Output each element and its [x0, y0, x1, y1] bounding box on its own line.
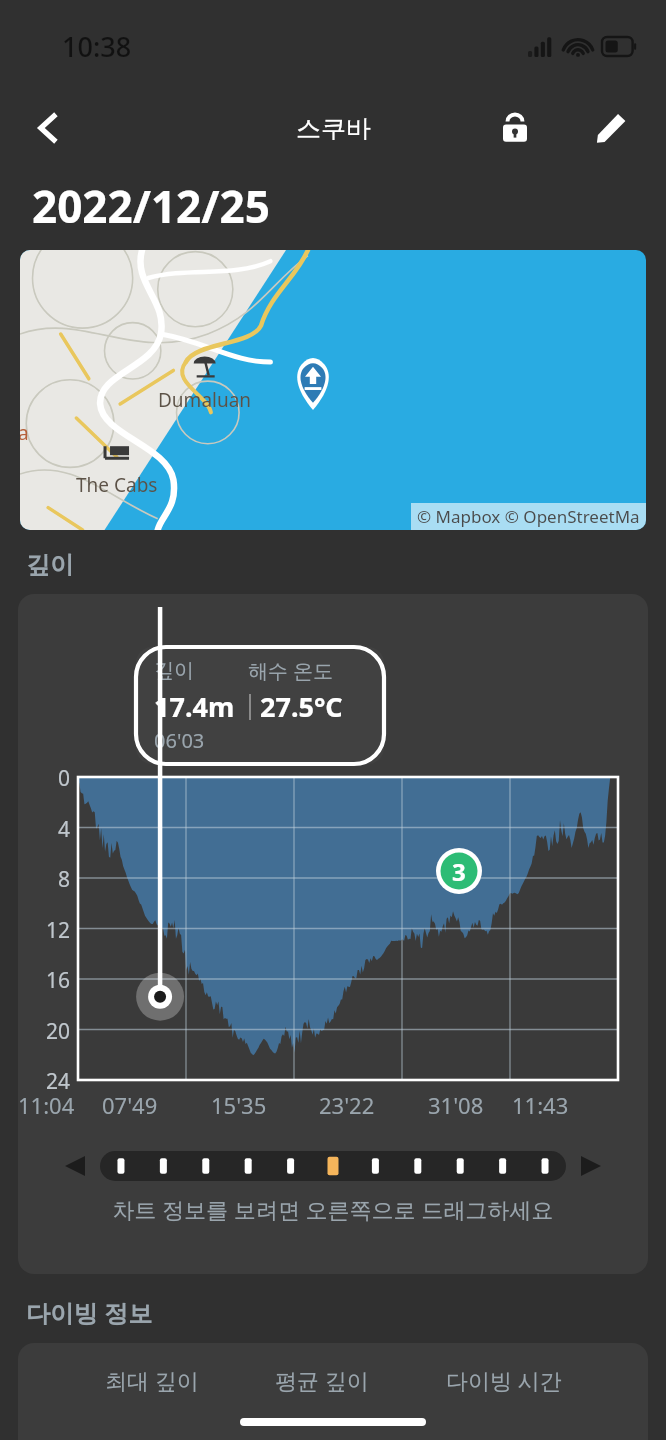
staticText: 11:43	[512, 1090, 596, 1120]
staticText: 17.4m	[154, 688, 240, 725]
staticText: 27.5°C	[260, 688, 343, 725]
staticText: 10:38	[62, 28, 132, 65]
button[interactable]: Previous	[58, 1149, 92, 1183]
staticText: 차트 정보를 보려면 오른쪽으로 드래그하세요	[18, 1194, 648, 1224]
staticText: 11:04	[18, 1090, 102, 1120]
staticText: 15'35	[211, 1090, 295, 1120]
staticText: a	[20, 420, 29, 446]
staticText: 07'49	[102, 1090, 186, 1120]
button[interactable]: Dive marker 3	[436, 848, 482, 894]
staticText: 31'08	[428, 1090, 512, 1120]
staticText: 4	[18, 815, 70, 844]
staticText: 깊이	[26, 550, 74, 580]
button[interactable]: Back	[16, 96, 80, 160]
staticText: 해수 온도	[248, 657, 334, 684]
staticText: 스쿠바	[296, 113, 371, 144]
staticText: 다이빙 정보	[26, 1296, 153, 1329]
button[interactable]: Dive location map	[20, 250, 646, 530]
button[interactable]: Chart scrubber	[100, 1151, 566, 1181]
staticText: 다이빙 시간	[446, 1365, 562, 1395]
button[interactable]: Lock	[486, 99, 544, 157]
button[interactable]: Edit	[582, 99, 640, 157]
staticText: © Mapbox © OpenStreetMa	[417, 505, 640, 528]
staticText: 평균 깊이	[275, 1365, 369, 1395]
staticText: 2022/12/25	[32, 176, 270, 236]
staticText: 16	[18, 966, 70, 995]
staticText: Dumaluan	[158, 387, 252, 413]
staticText: 20	[18, 1017, 70, 1046]
staticText: 23'22	[319, 1090, 403, 1120]
staticText: 0	[18, 764, 70, 793]
staticText: 깊이	[154, 658, 248, 683]
staticText: 24	[18, 1067, 70, 1096]
button[interactable]: Next	[574, 1149, 608, 1183]
staticText: 06'03	[154, 727, 205, 754]
button[interactable]: 최대 깊이	[18, 1343, 648, 1440]
staticText: The Cabs	[76, 472, 158, 498]
staticText: 12	[18, 916, 70, 945]
staticText: 3	[452, 855, 466, 888]
staticText: 8	[18, 865, 70, 894]
staticText: 최대 깊이	[105, 1365, 199, 1395]
